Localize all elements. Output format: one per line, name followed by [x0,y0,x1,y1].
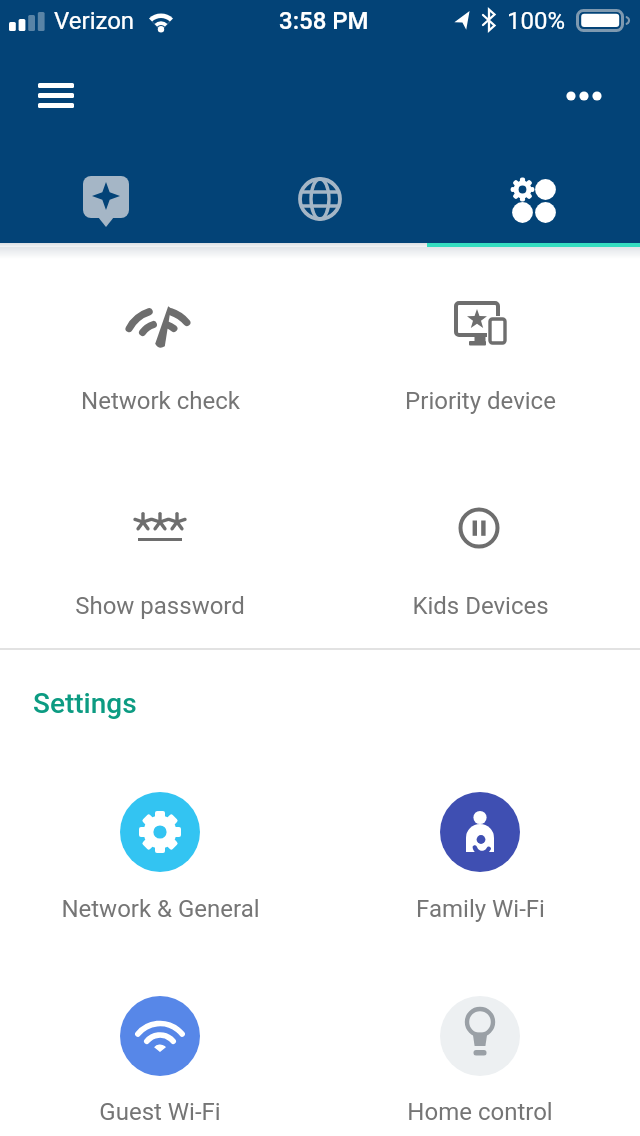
staticText: Network & General [61,895,260,923]
button[interactable] [24,70,88,122]
button[interactable] [552,72,616,120]
staticText: Kids Devices [412,592,549,620]
staticText: Home control [407,1098,553,1126]
button[interactable] [427,150,640,243]
staticText: Family Wi-Fi [416,895,545,923]
staticText: Network check [81,387,240,415]
button[interactable] [340,490,620,630]
staticText: Verizon [54,7,135,35]
button[interactable] [20,490,300,630]
staticText: 3:58 PM [279,7,369,35]
button[interactable] [20,278,300,428]
button[interactable] [214,150,427,243]
button[interactable] [340,990,620,1136]
staticText: 100% [507,7,566,35]
button[interactable] [340,278,620,428]
staticText: Guest Wi-Fi [99,1098,221,1126]
button[interactable] [0,150,214,243]
button[interactable] [340,785,620,935]
button[interactable] [20,990,300,1136]
staticText: Settings [33,687,137,720]
staticText: Priority device [405,387,556,415]
staticText: Show password [75,592,245,620]
button[interactable] [20,785,300,935]
